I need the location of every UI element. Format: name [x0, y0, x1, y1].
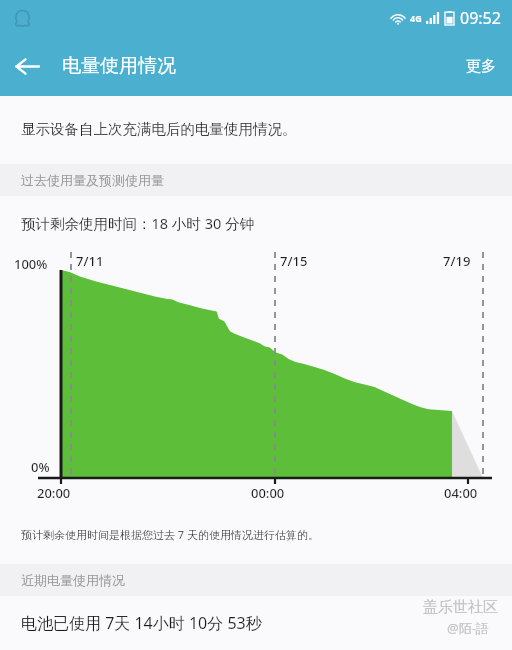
staticText: 4G [410, 12, 422, 24]
staticText: 近期电量使用情况 [21, 572, 125, 588]
staticText: 04:00 [444, 484, 478, 502]
staticText: @陌-語 [447, 619, 489, 637]
staticText: 电量使用情况 [62, 54, 176, 78]
staticText: 更多 [466, 57, 496, 76]
staticText: 7/15 [280, 252, 308, 270]
button[interactable]: 返回 [0, 39, 54, 93]
staticText: 电池已使用 7天 14小时 10分 53秒 [21, 612, 262, 634]
staticText: 过去使用量及预测使用量 [21, 172, 164, 188]
staticText: 预计剩余使用时间：18 小时 30 分钟 [21, 213, 254, 233]
staticText: 0% [31, 458, 50, 476]
staticText: 显示设备自上次充满电后的电量使用情况。 [21, 120, 297, 138]
staticText: 7/11 [76, 252, 104, 270]
staticText: 预计剩余使用时间是根据您过去 7 天的使用情况进行估算的。 [21, 527, 320, 542]
button[interactable]: 更多 [450, 36, 512, 96]
staticText: 7/19 [443, 252, 471, 270]
staticText: 盖乐世社区 [423, 598, 498, 617]
staticText: 09:52 [460, 7, 501, 29]
staticText: 00:00 [251, 484, 285, 502]
staticText: 20:00 [37, 484, 71, 502]
staticText: 100% [14, 255, 48, 273]
button[interactable]: 电池已使用 7天 14小时 10分 53秒 [0, 596, 512, 650]
